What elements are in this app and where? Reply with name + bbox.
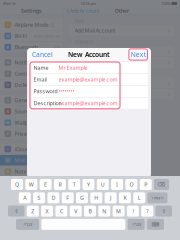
button[interactable]: N [0,57,63,68]
staticText: H [94,194,98,201]
staticText: D [6,82,9,87]
button[interactable]: S [33,192,45,203]
button[interactable]: Add LDAP Account [63,46,180,56]
button[interactable]: S [0,106,63,117]
staticText: •••••••• [58,88,74,95]
staticText: Adamdinternet [34,33,60,39]
button[interactable]: G [76,192,88,203]
button[interactable]: ⇧ [155,206,172,217]
button[interactable]: D [0,79,63,90]
staticText: Name [33,64,48,71]
button[interactable]: Add Mail Account [63,25,180,36]
button[interactable]: Add Subscribed Calendar [63,89,180,99]
staticText: R [58,181,61,188]
button[interactable]: Z [27,206,39,217]
button[interactable]: I [111,179,123,190]
staticText: Add CalDAV Account [74,79,122,86]
staticText: Notes [15,168,30,175]
staticText: CONTACTS [74,39,93,44]
staticText: O [129,181,133,188]
button[interactable]: W [0,31,63,41]
staticText: Airplane Mode [15,21,49,28]
staticText: › [168,79,170,87]
button[interactable]: B [0,42,63,53]
button[interactable]: P [140,179,152,190]
button[interactable]: B [84,206,96,217]
staticText: ⌫ [157,181,165,188]
staticText: CALENDARS [74,71,97,76]
button[interactable]: P [0,128,63,139]
button[interactable]: Y [82,179,94,190]
staticText: Settings [21,7,42,14]
staticText: C [60,208,63,215]
staticText: .?123 [23,222,32,227]
button[interactable]: .?123 [128,219,145,230]
button[interactable]: Add CardDAV Account [63,57,180,67]
button[interactable]: ? [141,206,153,217]
button[interactable]: ✈ [0,19,63,30]
button[interactable]: F [62,192,74,203]
button[interactable]: X [41,206,53,217]
button[interactable]: ⇧ [8,206,24,217]
button[interactable]: ⌨ [147,219,164,230]
staticText: › [168,47,170,56]
staticText: M [116,208,121,215]
button[interactable]: V [70,206,82,217]
staticText: J [110,194,111,201]
button[interactable]: N [98,206,110,217]
button[interactable]: ! [127,206,139,217]
staticText: Add Account [69,7,99,14]
button[interactable]: C [55,206,67,217]
staticText: MAIL [74,18,84,24]
button[interactable]: Next [129,49,147,60]
button[interactable]: W [0,117,63,128]
button[interactable]: R [54,179,66,190]
button[interactable]: A [19,192,31,203]
staticText: Add Mail Account [74,27,115,34]
button[interactable]: N [0,166,63,177]
staticText: S [38,194,41,201]
button[interactable]: return [147,192,167,203]
button[interactable]: M [0,155,63,166]
button[interactable]: K [119,192,131,203]
staticText: F [66,194,69,201]
staticText: Mr Example [58,64,87,71]
staticText: Email [33,76,46,83]
button[interactable]: Add CalDAV Account [63,78,180,88]
staticText: Add LDAP Account [74,48,118,55]
staticText: 10:16 pm [80,1,96,6]
button[interactable]: L [133,192,145,203]
staticText: Cancel [32,50,53,59]
button[interactable]: Cancel [30,48,54,61]
button[interactable]: M [113,206,125,217]
staticText: G [6,97,9,103]
staticText: ⇧ [162,208,166,214]
button[interactable]: ‹ [66,5,99,16]
staticText: example@example.com [58,100,117,107]
button[interactable]: H [90,192,102,203]
staticText: N [6,60,9,65]
button[interactable]: G [0,95,63,106]
button[interactable]: D [47,192,59,203]
staticText: return [152,195,163,200]
staticText: I [116,181,118,188]
button[interactable]: J [105,192,117,203]
staticText: ⇧ [14,208,18,214]
button[interactable]: E [40,179,52,190]
button[interactable] [41,219,125,230]
button[interactable]: W [25,179,37,190]
button[interactable]: T [68,179,80,190]
button[interactable]: O [125,179,137,190]
staticText: Control Centre [15,70,49,77]
button[interactable]: i [0,144,63,154]
staticText: Do Not Disturb [15,81,51,88]
button[interactable]: ⌫ [154,179,169,190]
staticText: Notifications [15,59,46,66]
button[interactable]: U [97,179,109,190]
staticText: C [6,71,9,76]
button[interactable]: Q [11,179,23,190]
staticText: G [80,194,84,201]
button[interactable]: .?123 [16,219,39,230]
button[interactable]: C [0,68,63,79]
